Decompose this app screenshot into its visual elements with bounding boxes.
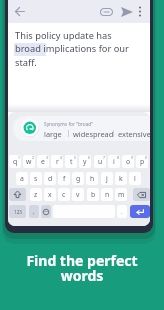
button[interactable] [41,205,51,218]
staticText: f [63,174,66,183]
staticText: 123 [14,209,22,215]
staticText: 3 [46,155,48,160]
staticText: b [91,190,96,199]
staticText: 9 [131,155,133,160]
staticText: j [106,174,108,183]
staticText: g [76,174,81,183]
staticText: i [113,157,115,166]
button[interactable]: l [129,172,141,185]
button[interactable]: n [101,188,113,201]
staticText: 6 [88,155,90,160]
button[interactable] [100,8,113,16]
staticText: 5 [74,155,76,160]
staticText: k [119,174,123,183]
staticText: m [118,190,125,199]
staticText: Find the perfect words [0,251,164,285]
staticText: staff. [15,56,37,69]
button[interactable]: a [16,172,28,185]
button[interactable]: q [9,155,21,168]
button[interactable]: s [30,172,42,185]
button[interactable]: x [44,188,56,201]
staticText: v [76,190,80,199]
button[interactable]: f [58,172,70,185]
button[interactable]: v [72,188,84,201]
staticText: . [121,208,123,216]
button[interactable]: u [94,155,106,168]
staticText: 7 [103,155,105,160]
button[interactable]: z [30,188,42,201]
staticText: p [140,157,145,166]
button[interactable]: o [122,155,134,168]
staticText: d [48,174,53,183]
button[interactable]: j [101,172,113,185]
button[interactable]: y [79,155,91,168]
button[interactable]: widespread [73,129,114,139]
button[interactable]: p [136,155,148,168]
staticText: u [98,157,103,166]
button[interactable] [15,7,25,16]
button[interactable]: , [29,205,39,218]
staticText: l [134,174,136,183]
button[interactable]: k [115,172,127,185]
staticText: h [90,174,95,183]
staticText: y [83,157,87,166]
staticText: n [105,190,110,199]
button[interactable]: 123 [9,205,26,218]
staticText: a [20,174,24,183]
button[interactable]: e [37,155,49,168]
staticText: t [70,157,73,166]
button[interactable] [138,6,142,17]
staticText: z [34,190,38,199]
staticText: 1 [18,155,20,160]
button[interactable] [9,188,26,201]
button[interactable]: w [23,155,35,168]
button[interactable]: h [86,172,98,185]
button[interactable]: d [44,172,56,185]
button[interactable] [121,7,133,17]
button[interactable]: large [44,129,62,139]
button[interactable] [130,205,150,218]
staticText: , [33,208,35,216]
staticText: 2 [32,155,34,160]
staticText: 8 [117,155,119,160]
staticText: r [56,157,59,166]
button[interactable]: . [117,205,127,218]
staticText: c [62,190,66,199]
staticText: 0 [145,155,147,160]
button[interactable] [21,119,39,137]
button[interactable]: m [115,188,127,201]
button[interactable]: r [51,155,63,168]
staticText: q [13,157,18,166]
staticText: This policy update has [15,29,112,42]
button[interactable] [133,188,150,201]
button[interactable]: t [65,155,77,168]
staticText: broad implications for our [15,42,129,55]
staticText: x [48,190,52,199]
staticText: s [34,174,38,183]
staticText: o [126,157,131,166]
button[interactable]: g [72,172,84,185]
staticText: e [41,157,45,166]
button[interactable]: b [87,188,99,201]
button[interactable]: extensive [118,129,150,139]
staticText: 4 [60,155,62,160]
staticText: w [26,157,32,166]
button[interactable]: i [108,155,120,168]
staticText: Synonyms for “broad” [44,121,93,128]
button[interactable]: c [58,188,70,201]
